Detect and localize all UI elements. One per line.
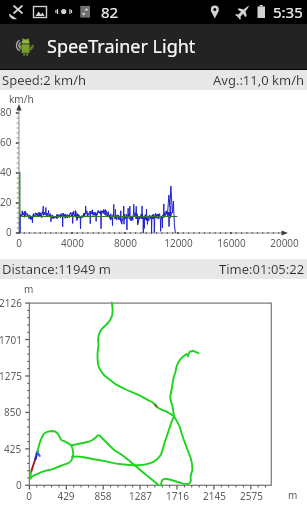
staticText: 82 (101, 2, 119, 22)
staticText: 0 (16, 236, 22, 250)
staticText: Speed:2 km/h (2, 71, 87, 89)
staticText: 1275 (0, 369, 22, 383)
staticText: Distance:11949 m (2, 260, 111, 278)
staticText: SpeeTrainer Light (47, 34, 196, 59)
staticText: Avg.:11,0 km/h (213, 71, 305, 89)
staticText: 4000 (61, 236, 84, 250)
staticText: 8000 (114, 236, 137, 250)
staticText: 425 (4, 442, 22, 456)
staticText: 1716 (166, 489, 189, 503)
staticText: 2145 (203, 489, 226, 503)
staticText: 2126 (0, 296, 22, 310)
staticText: m (24, 282, 34, 296)
staticText: 850 (4, 405, 22, 419)
staticText: 1287 (129, 489, 152, 503)
staticText: 20 (0, 195, 12, 209)
staticText: 60 (0, 135, 12, 149)
button[interactable]: App icon (0, 24, 307, 69)
staticText: 1701 (0, 333, 22, 347)
staticText: 80 (0, 105, 12, 119)
staticText: m (288, 488, 298, 502)
staticText: Time:01:05:22 (219, 260, 305, 278)
other: App icon (13, 35, 36, 58)
staticText: 0 (6, 225, 12, 239)
staticText: 5:35 (273, 2, 303, 22)
staticText: 0 (26, 489, 32, 503)
staticText: 40 (0, 165, 12, 179)
staticText: 16000 (217, 236, 246, 250)
staticText: 12000 (164, 236, 193, 250)
staticText: 2575 (240, 489, 263, 503)
staticText: 0 (16, 478, 22, 492)
staticText: 429 (57, 489, 75, 503)
staticText: 20000 (270, 236, 299, 250)
staticText: km/h (9, 92, 34, 106)
staticText: 858 (94, 489, 112, 503)
